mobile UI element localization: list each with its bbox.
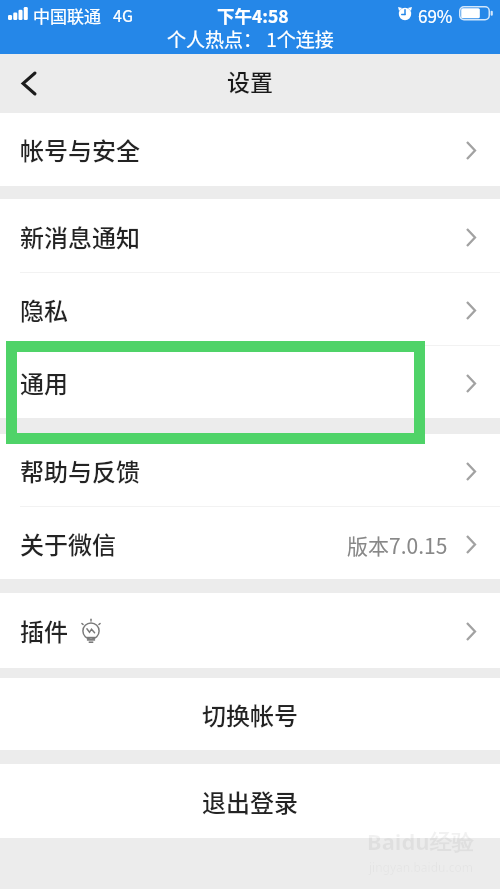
staticText: 个人热点： 1个连接	[167, 25, 334, 53]
staticText: 通用	[20, 365, 68, 400]
button[interactable]: 插件	[0, 593, 500, 668]
staticText: 隐私	[20, 292, 68, 327]
button[interactable]: 帮助与反馈	[0, 434, 500, 507]
staticText: Baidu经验	[367, 826, 474, 856]
staticText: 版本7.0.15	[347, 530, 448, 560]
button[interactable]: 帐号与安全	[0, 113, 500, 186]
staticText: 关于微信	[20, 526, 116, 561]
staticText: 下午4:58	[217, 3, 289, 28]
button[interactable]: 退出登录	[0, 764, 500, 838]
button[interactable]: 关于微信	[0, 507, 500, 579]
button[interactable]: Back	[0, 56, 56, 112]
button[interactable]: 切换帐号	[0, 678, 500, 750]
staticText: 帐号与安全	[20, 132, 140, 167]
staticText: 设置	[227, 64, 273, 97]
staticText: 新消息通知	[20, 219, 140, 254]
staticText: 中国联通	[33, 3, 101, 28]
staticText: 4G	[113, 3, 133, 26]
button[interactable]: 通用	[0, 346, 500, 418]
staticText: 帮助与反馈	[20, 453, 140, 488]
button[interactable]: 新消息通知	[0, 199, 500, 273]
staticText: 切换帐号	[202, 697, 298, 732]
staticText: 69%	[418, 3, 453, 28]
staticText: 插件	[20, 613, 68, 648]
button[interactable]: 隐私	[0, 273, 500, 346]
staticText: 退出登录	[202, 784, 298, 819]
